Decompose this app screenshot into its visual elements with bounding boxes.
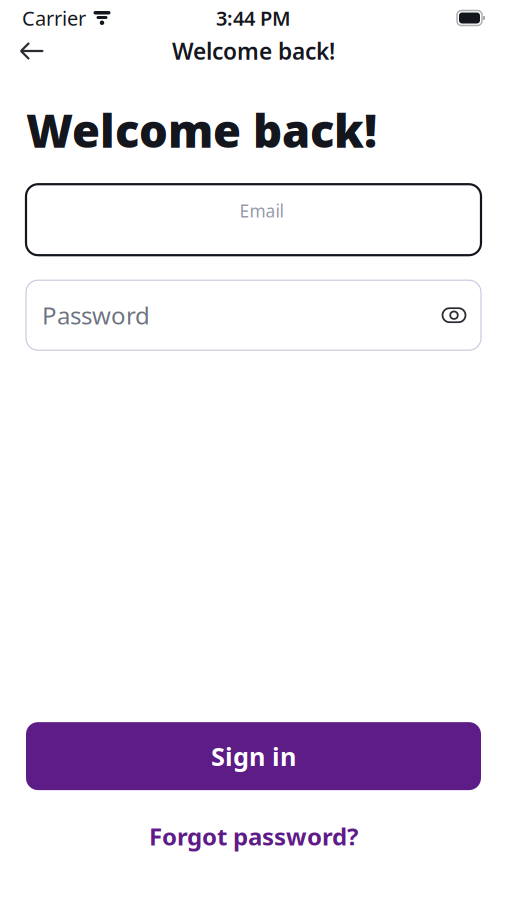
staticText: Sign in: [211, 739, 296, 773]
staticText: Forgot password?: [149, 820, 358, 852]
staticText: Password: [42, 299, 150, 331]
staticText: Welcome back!: [26, 100, 377, 160]
staticText: Email: [239, 199, 283, 222]
button[interactable]: Sign in: [26, 722, 481, 790]
button[interactable]: Forgot password?: [129, 810, 378, 862]
staticText: 3:44 PM: [216, 5, 291, 31]
staticText: Carrier: [22, 5, 86, 31]
button[interactable]: Back: [10, 31, 54, 71]
button[interactable]: Show password: [433, 294, 475, 336]
staticText: Welcome back!: [172, 36, 335, 66]
